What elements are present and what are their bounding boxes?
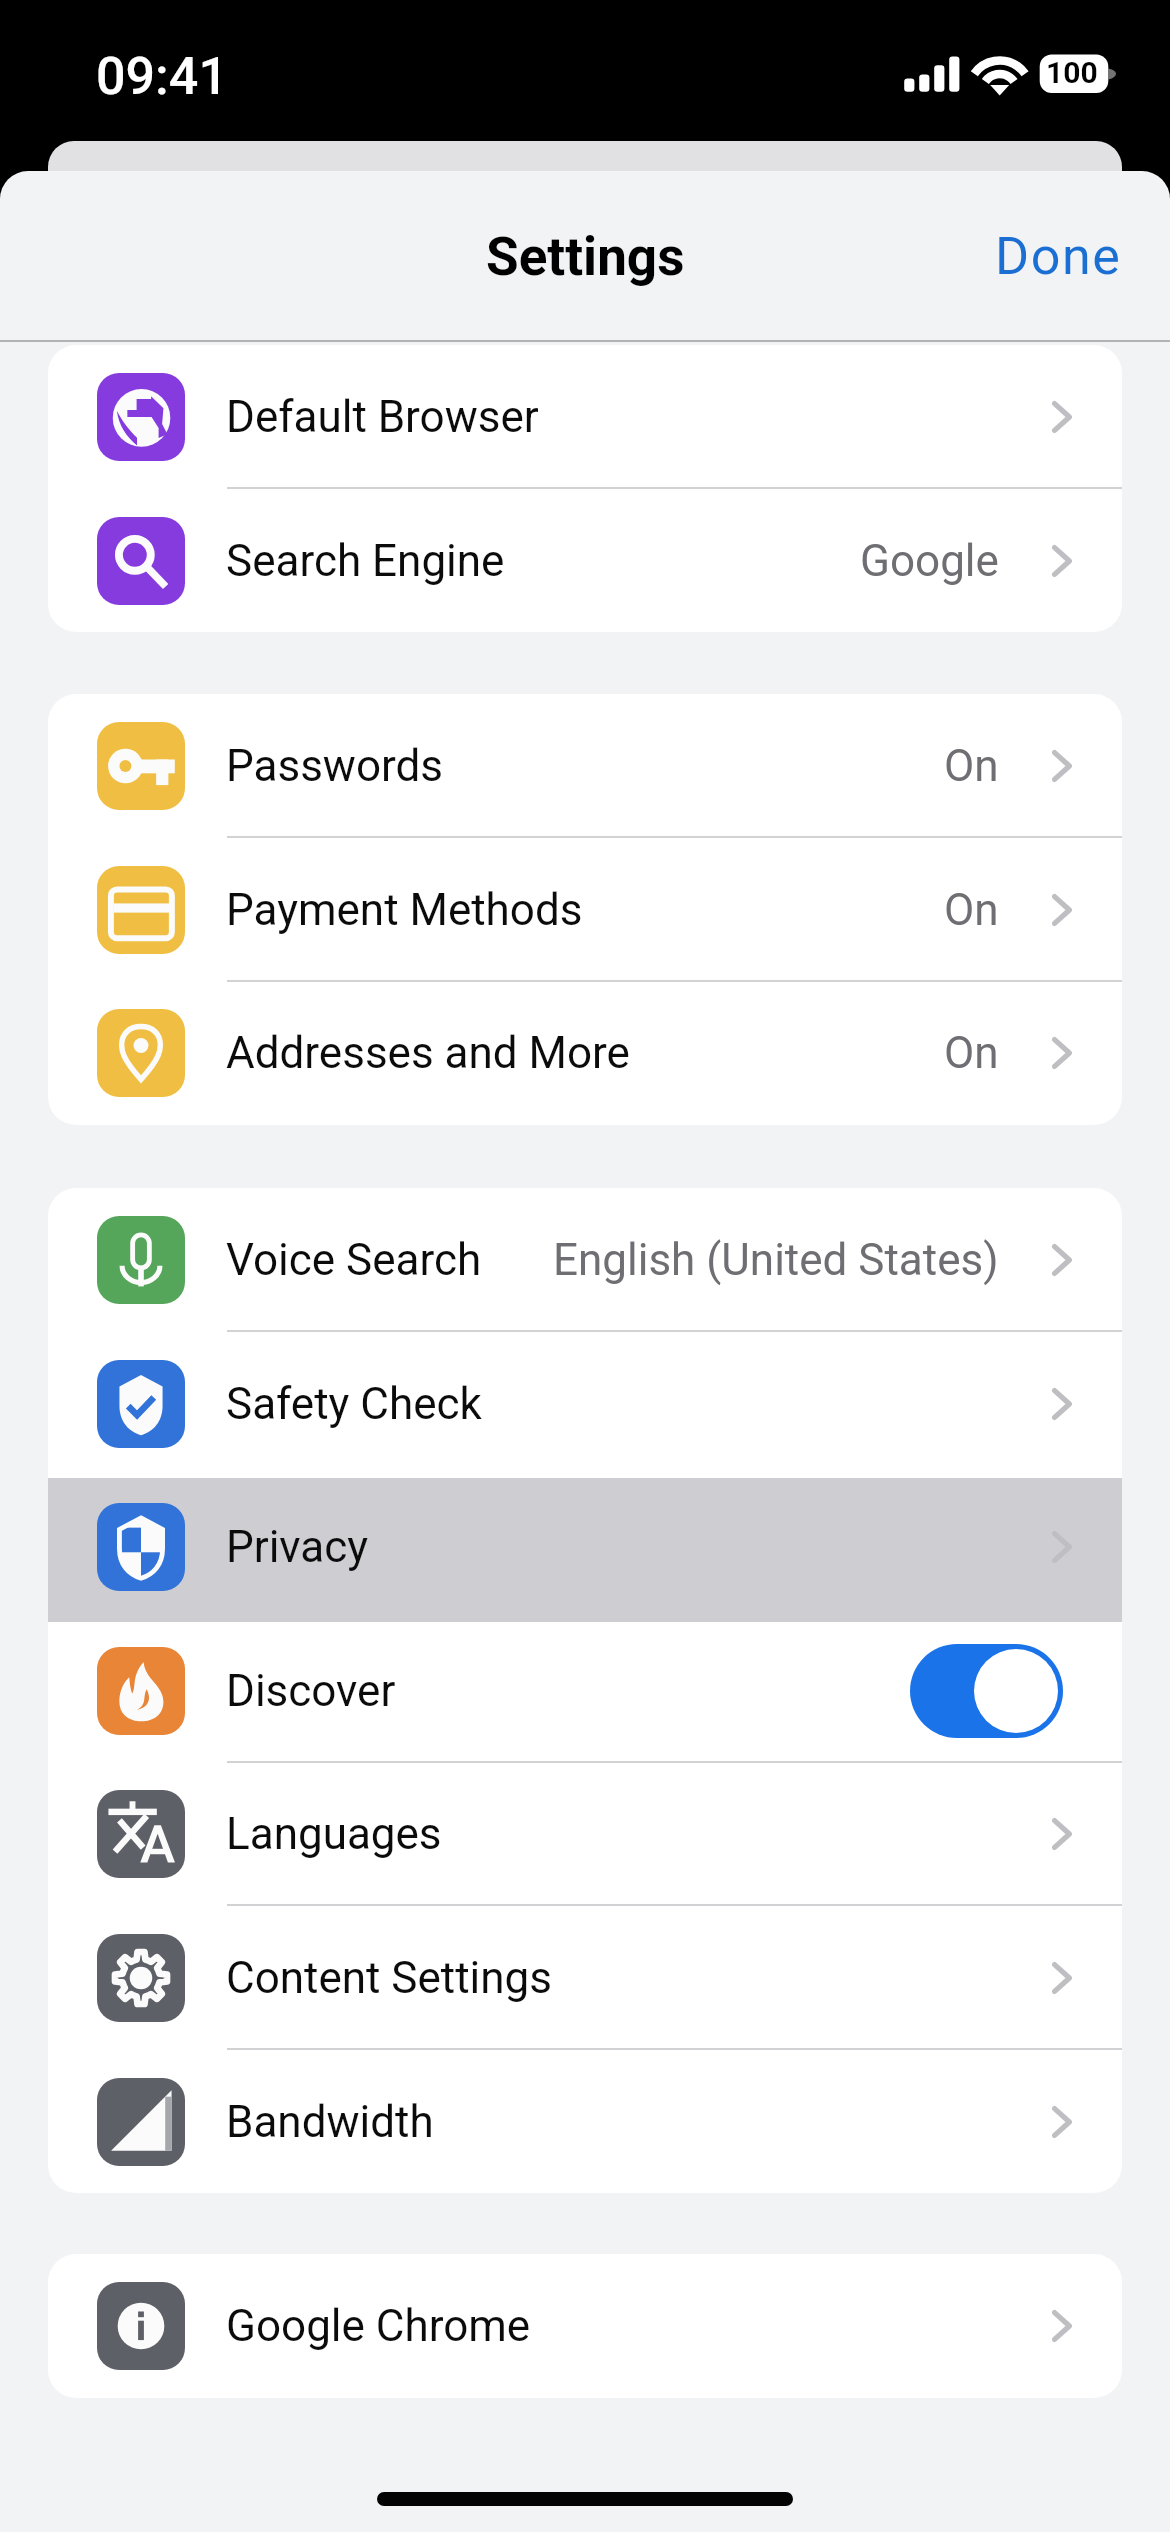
button[interactable]: Languages	[48, 1762, 1122, 1906]
button[interactable]: Google Chrome	[48, 2254, 1122, 2398]
button[interactable]: Discover toggle	[910, 1644, 1063, 1738]
staticText: Safety Check	[226, 1378, 482, 1430]
button[interactable]: Search Engine	[48, 489, 1122, 632]
staticText: Addresses and More	[226, 1027, 630, 1079]
staticText: 09:41	[96, 46, 228, 107]
staticText: Search Engine	[226, 535, 505, 587]
staticText: Default Browser	[226, 391, 539, 443]
button[interactable]: Payment Methods	[48, 838, 1122, 982]
staticText: On	[944, 884, 999, 936]
staticText: On	[944, 740, 999, 792]
button[interactable]: Discover	[48, 1619, 1122, 1763]
button[interactable]: Default Browser	[48, 345, 1122, 489]
button[interactable]: Privacy	[48, 1475, 1122, 1619]
button[interactable]: Bandwidth	[48, 2050, 1122, 2193]
staticText: Settings	[486, 226, 685, 288]
staticText: Privacy	[226, 1521, 369, 1573]
staticText: Payment Methods	[226, 884, 583, 936]
staticText: Bandwidth	[226, 2096, 434, 2148]
staticText: Google	[860, 535, 999, 587]
staticText: Content Settings	[226, 1952, 553, 2004]
staticText: Google Chrome	[226, 2300, 531, 2352]
staticText: 100	[1046, 55, 1098, 90]
staticText: English (United States)	[553, 1234, 999, 1286]
button[interactable]: Passwords	[48, 694, 1122, 838]
staticText: Discover	[226, 1665, 396, 1717]
staticText: Languages	[226, 1808, 442, 1860]
staticText: On	[944, 1027, 999, 1079]
button[interactable]: Safety Check	[48, 1332, 1122, 1476]
button[interactable]: Voice Search	[48, 1188, 1122, 1332]
staticText: Passwords	[226, 740, 444, 792]
button[interactable]: Done	[955, 204, 1170, 309]
staticText: Voice Search	[226, 1234, 482, 1286]
button[interactable]: Content Settings	[48, 1906, 1122, 2050]
button[interactable]: Addresses and More	[48, 981, 1122, 1125]
staticText: Done	[995, 226, 1122, 287]
